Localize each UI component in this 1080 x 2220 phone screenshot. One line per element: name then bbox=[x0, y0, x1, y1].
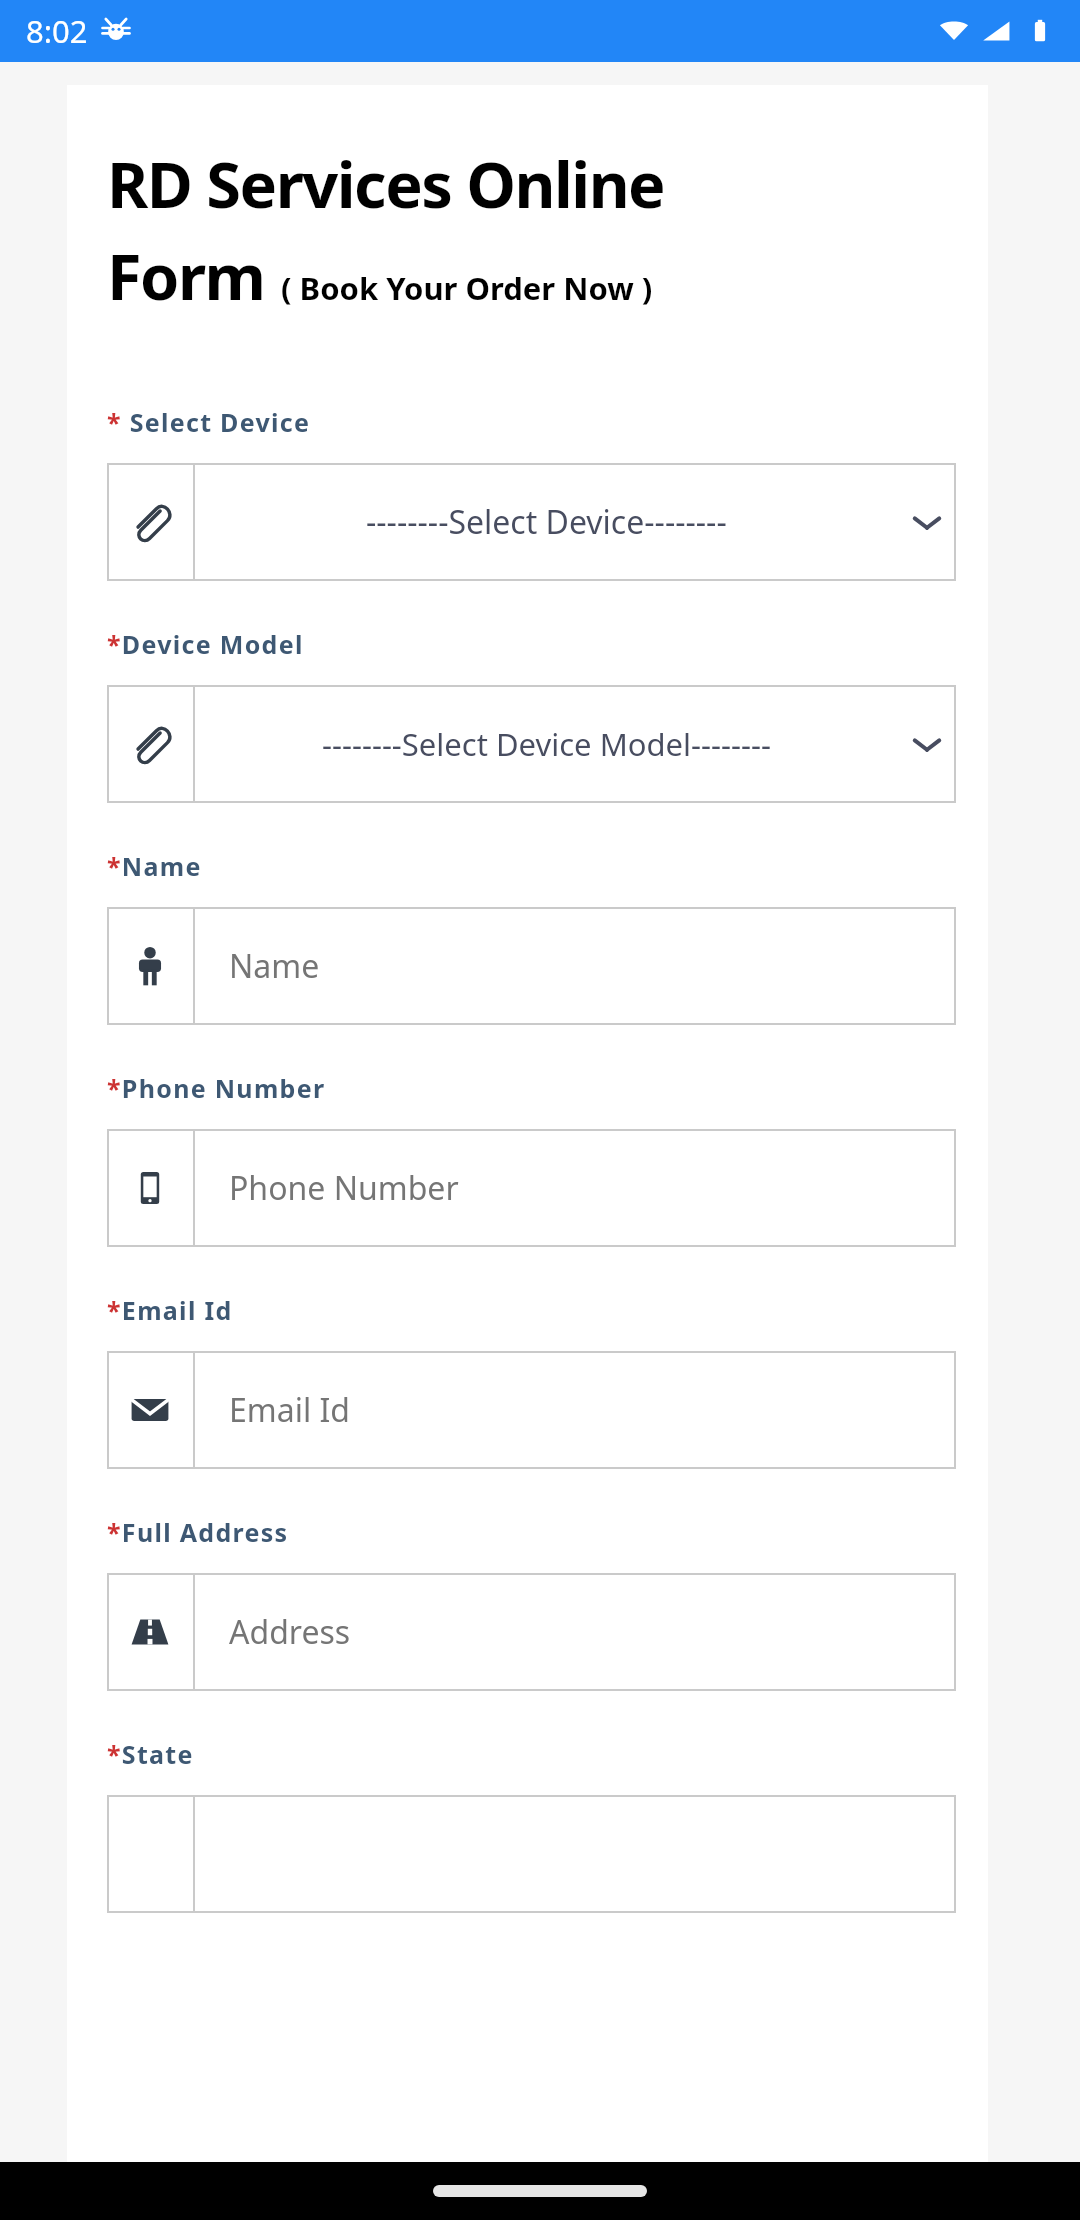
staticText: Name bbox=[229, 944, 320, 988]
button[interactable]: Person bbox=[107, 907, 956, 1025]
staticText: *Device Model bbox=[107, 627, 304, 661]
staticText: RD Services Online bbox=[107, 141, 665, 227]
staticText: *Full Address bbox=[107, 1515, 289, 1549]
staticText: Phone Number bbox=[229, 1166, 459, 1210]
button[interactable]: --------Select Device-------- bbox=[107, 463, 956, 581]
button[interactable]: Address bbox=[107, 1573, 956, 1691]
staticText: 8:02 bbox=[26, 10, 88, 52]
staticText: *Name bbox=[107, 849, 202, 883]
staticText: --------Select Device Model-------- bbox=[322, 723, 771, 765]
staticText: * Select Device bbox=[107, 405, 311, 439]
button[interactable]: Phone bbox=[107, 1129, 956, 1247]
staticText: Email Id bbox=[229, 1388, 351, 1432]
staticText: --------Select Device-------- bbox=[366, 500, 727, 544]
button[interactable]: State bbox=[107, 1795, 956, 1913]
staticText: Address bbox=[229, 1610, 351, 1654]
staticText: *Email Id bbox=[107, 1293, 233, 1327]
staticText: ( Book Your Order Now ) bbox=[281, 267, 653, 309]
button[interactable]: --------Select Device Model-------- bbox=[107, 685, 956, 803]
button[interactable]: Email bbox=[107, 1351, 956, 1469]
staticText: Form bbox=[107, 233, 265, 319]
staticText: *Phone Number bbox=[107, 1071, 326, 1105]
staticText: *State bbox=[107, 1737, 194, 1771]
